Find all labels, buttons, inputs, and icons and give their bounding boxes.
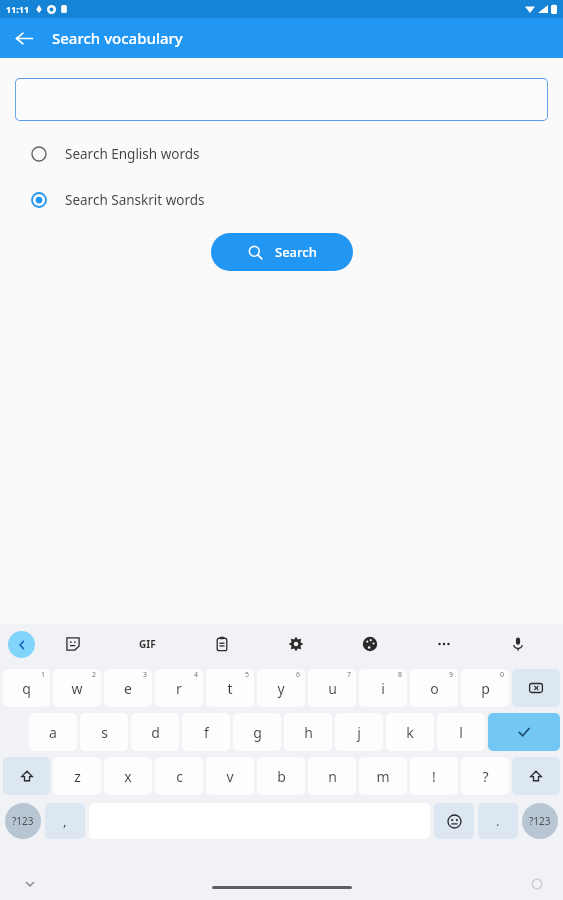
button[interactable]: p: [461, 669, 509, 707]
button[interactable]: !: [410, 757, 458, 795]
button[interactable]: Shift: [512, 757, 560, 795]
staticText: .: [496, 812, 500, 830]
staticText: 0: [500, 670, 505, 680]
staticText: y: [277, 679, 285, 698]
button[interactable]: ?123: [522, 803, 558, 839]
button[interactable]: ?123: [5, 803, 41, 839]
button[interactable]: [15, 78, 548, 121]
staticText: g: [253, 723, 262, 742]
staticText: o: [430, 679, 439, 698]
button[interactable]: i: [359, 669, 407, 707]
staticText: 8: [398, 670, 403, 680]
button[interactable]: Hide keyboard: [16, 870, 44, 898]
button[interactable]: Enter: [488, 713, 560, 751]
staticText: ,: [63, 812, 67, 830]
button[interactable]: Search: [211, 233, 353, 271]
staticText: r: [176, 679, 182, 698]
staticText: s: [101, 723, 108, 742]
button[interactable]: e: [104, 669, 152, 707]
staticText: p: [481, 679, 490, 698]
staticText: i: [381, 679, 385, 698]
staticText: l: [459, 723, 463, 742]
staticText: 4: [194, 670, 199, 680]
button[interactable]: o: [410, 669, 458, 707]
staticText: k: [406, 723, 414, 742]
button[interactable]: q: [3, 669, 50, 707]
staticText: j: [357, 723, 361, 742]
staticText: 7: [347, 670, 352, 680]
staticText: c: [176, 767, 183, 786]
button[interactable]: ,: [45, 803, 85, 839]
staticText: f: [204, 723, 209, 742]
staticText: ?123: [12, 814, 34, 828]
staticText: b: [277, 767, 286, 786]
staticText: ?123: [529, 814, 551, 828]
button[interactable]: Home: [212, 886, 352, 889]
staticText: n: [328, 767, 337, 786]
button[interactable]: s: [80, 713, 128, 751]
staticText: GIF: [139, 637, 156, 651]
button[interactable]: Keyboard option: [333, 624, 407, 664]
staticText: w: [71, 679, 83, 698]
staticText: 1: [41, 670, 46, 680]
button[interactable]: v: [206, 757, 254, 795]
button[interactable]: Keyboard option: [110, 624, 185, 664]
button[interactable]: Backspace: [512, 669, 560, 707]
button[interactable]: k: [386, 713, 434, 751]
button[interactable]: m: [359, 757, 407, 795]
button[interactable]: ?: [461, 757, 509, 795]
button[interactable]: c: [155, 757, 203, 795]
button[interactable]: r: [155, 669, 203, 707]
staticText: 3: [143, 670, 148, 680]
button[interactable]: Emoji: [434, 803, 474, 839]
button[interactable]: a: [29, 713, 77, 751]
button[interactable]: Shift: [3, 757, 50, 795]
button[interactable]: Search Sanskrit words: [0, 185, 563, 215]
button[interactable]: l: [437, 713, 485, 751]
button[interactable]: g: [233, 713, 281, 751]
staticText: 11:11: [6, 3, 30, 15]
staticText: u: [328, 679, 337, 698]
button[interactable]: Keyboard switcher: [525, 872, 549, 896]
button[interactable]: h: [284, 713, 332, 751]
button[interactable]: f: [182, 713, 230, 751]
button[interactable]: t: [206, 669, 254, 707]
staticText: ?: [482, 767, 489, 786]
staticText: m: [376, 767, 390, 786]
staticText: z: [74, 767, 81, 786]
button[interactable]: .: [478, 803, 518, 839]
staticText: !: [432, 767, 436, 786]
button[interactable]: Keyboard option: [259, 624, 333, 664]
staticText: 9: [449, 670, 454, 680]
button[interactable]: Keyboard option: [407, 624, 481, 664]
button[interactable]: b: [257, 757, 305, 795]
button[interactable]: Keyboard option: [481, 624, 555, 664]
button[interactable]: x: [104, 757, 152, 795]
staticText: Search Sanskrit words: [65, 191, 205, 209]
button[interactable]: j: [335, 713, 383, 751]
staticText: Search English words: [65, 145, 200, 163]
button[interactable]: n: [308, 757, 356, 795]
button[interactable]: y: [257, 669, 305, 707]
button[interactable]: Keyboard option: [185, 624, 259, 664]
button[interactable]: Back: [6, 20, 42, 56]
button[interactable]: u: [308, 669, 356, 707]
button[interactable]: w: [53, 669, 101, 707]
staticText: Search vocabulary: [52, 28, 183, 48]
staticText: x: [124, 767, 132, 786]
staticText: h: [304, 723, 313, 742]
staticText: e: [124, 679, 132, 698]
staticText: Search: [275, 243, 317, 261]
button[interactable]: d: [131, 713, 179, 751]
button[interactable]: z: [53, 757, 101, 795]
staticText: q: [22, 679, 31, 698]
staticText: 6: [296, 670, 301, 680]
staticText: 5: [245, 670, 250, 680]
button[interactable]: Keyboard option: [35, 624, 110, 664]
button[interactable]: Previous: [8, 631, 35, 658]
button[interactable]: Search English words: [0, 139, 563, 169]
staticText: t: [227, 679, 233, 698]
staticText: a: [49, 723, 57, 742]
staticText: 2: [92, 670, 97, 680]
